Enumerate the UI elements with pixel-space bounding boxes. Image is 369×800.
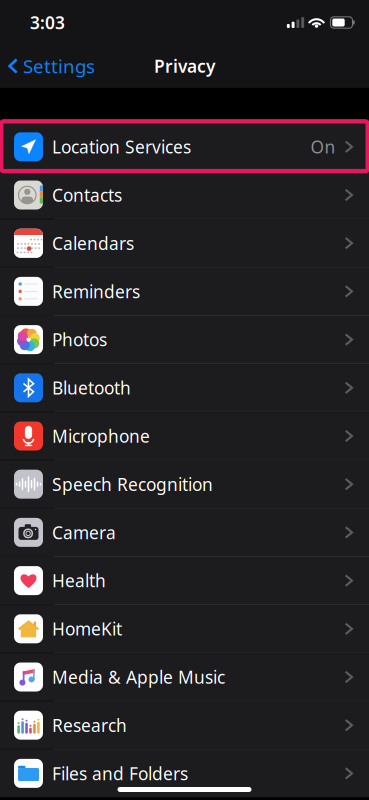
staticText: Bluetooth — [52, 376, 131, 399]
staticText: Files and Folders — [52, 762, 188, 785]
staticText: Research — [52, 714, 127, 737]
staticText: Photos — [52, 328, 107, 351]
staticText: Privacy — [154, 54, 215, 77]
button[interactable]: Health — [0, 557, 369, 604]
staticText: Location Services — [52, 135, 191, 158]
staticText: Health — [52, 569, 106, 592]
staticText: Microphone — [52, 424, 150, 447]
button[interactable]: HomeKit — [0, 605, 369, 652]
staticText: Reminders — [52, 280, 140, 303]
button[interactable]: Bluetooth — [0, 364, 369, 411]
button[interactable]: Speech Recognition — [0, 460, 369, 508]
button[interactable]: Settings — [0, 46, 103, 86]
staticText: HomeKit — [52, 617, 122, 640]
button[interactable]: Location Services — [0, 123, 369, 170]
button[interactable]: Photos — [0, 316, 369, 363]
button[interactable]: Microphone — [0, 412, 369, 460]
button[interactable]: Reminders — [0, 268, 369, 315]
staticText: 3:03 — [30, 11, 65, 34]
staticText: Camera — [52, 521, 116, 544]
button[interactable]: Camera — [0, 509, 369, 556]
button[interactable]: Research — [0, 701, 369, 749]
staticText: Calendars — [52, 232, 134, 255]
staticText: Settings — [23, 54, 95, 78]
staticText: Media & Apple Music — [52, 665, 225, 688]
button[interactable]: Media & Apple Music — [0, 653, 369, 701]
staticText: Contacts — [52, 183, 122, 206]
button[interactable]: Contacts — [0, 171, 369, 219]
button[interactable]: Files and Folders — [0, 750, 369, 797]
staticText: Speech Recognition — [52, 473, 213, 496]
staticText: On — [311, 135, 336, 158]
button[interactable]: Calendars — [0, 219, 369, 267]
